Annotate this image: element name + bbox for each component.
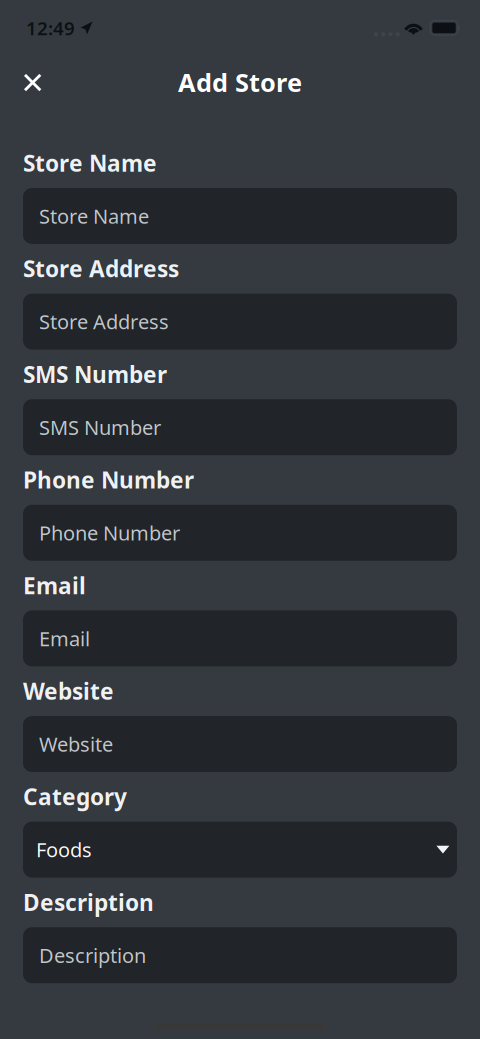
button[interactable]: Website — [23, 716, 457, 772]
staticText: Store Name — [39, 203, 149, 229]
button[interactable]: Close — [0, 39, 59, 95]
staticText: Description — [39, 942, 146, 968]
staticText: SMS Number — [39, 414, 161, 440]
staticText: Add Store — [178, 65, 302, 99]
staticText: Category — [23, 781, 127, 812]
staticText: Store Address — [23, 253, 179, 284]
button[interactable]: Description — [23, 927, 457, 983]
staticText: Store Address — [39, 308, 169, 335]
staticText: Website — [39, 731, 113, 757]
button[interactable]: Phone Number — [23, 505, 457, 561]
staticText: Store Name — [23, 148, 157, 178]
staticText: Email — [39, 625, 90, 652]
button[interactable]: Store Address — [23, 294, 457, 350]
staticText: Email — [23, 570, 86, 600]
button[interactable]: SMS Number — [23, 399, 457, 455]
staticText: Phone Number — [39, 519, 180, 546]
staticText: Description — [23, 887, 154, 917]
button[interactable]: Store Name — [23, 188, 457, 244]
staticText: Foods — [36, 836, 92, 863]
button[interactable]: Foods — [23, 822, 457, 878]
button[interactable]: Email — [23, 610, 457, 666]
staticText: Phone Number — [23, 465, 194, 495]
staticText: Website — [23, 676, 114, 706]
staticText: SMS Number — [23, 359, 167, 389]
staticText: 12:49 — [26, 15, 75, 40]
